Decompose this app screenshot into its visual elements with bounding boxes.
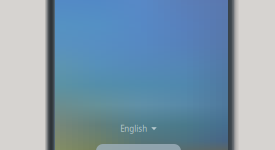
button[interactable]: English: [115, 120, 162, 137]
staticText: English: [120, 123, 147, 134]
